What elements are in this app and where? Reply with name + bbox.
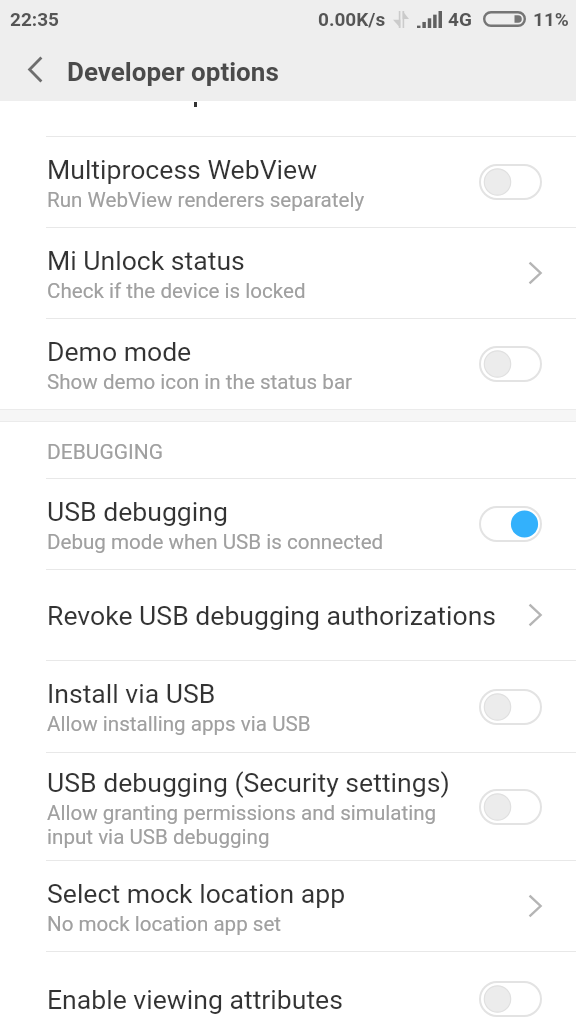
button[interactable]: Multiprocess WebView xyxy=(0,137,576,227)
staticText: USB debugging (Security settings) xyxy=(47,767,450,798)
staticText: 22:35 xyxy=(10,8,59,30)
staticText: Revoke USB debugging authorizations xyxy=(47,600,497,631)
button[interactable]: USB debugging xyxy=(0,479,576,569)
button[interactable]: USB debugging (Security settings) xyxy=(0,753,576,860)
staticText: input via USB debugging xyxy=(47,825,270,849)
staticText: Allow granting permissions and simulatin… xyxy=(47,801,437,825)
staticText: 0.00K/s xyxy=(318,8,386,30)
staticText: Multiprocess WebView xyxy=(47,154,318,185)
staticText: Allow installing apps via USB xyxy=(47,712,311,736)
staticText: Debug mode when USB is connected xyxy=(47,530,384,554)
button[interactable]: Mi Unlock status xyxy=(0,228,576,318)
staticText: No mock location app set xyxy=(47,912,282,936)
staticText: Check if the device is locked xyxy=(47,279,306,303)
staticText: Enable viewing attributes xyxy=(47,984,343,1015)
button[interactable]: Demo mode xyxy=(0,319,576,409)
staticText: 4G xyxy=(448,8,472,30)
button[interactable]: Enable viewing attributes xyxy=(0,952,576,1024)
button[interactable]: Select mock location app xyxy=(0,861,576,951)
staticText: Run WebView renderers separately xyxy=(47,188,365,212)
staticText: USB debugging xyxy=(47,496,228,527)
staticText: Developer options xyxy=(67,57,279,87)
staticText: Show demo icon in the status bar xyxy=(47,370,353,394)
button[interactable]: Revoke USB debugging authorizations xyxy=(0,570,576,660)
staticText: Mi Unlock status xyxy=(47,245,245,276)
staticText: Demo mode xyxy=(47,336,192,367)
staticText: DEBUGGING xyxy=(47,440,164,465)
button[interactable]: Back xyxy=(0,52,70,87)
staticText: Install via USB xyxy=(47,678,216,709)
staticText: Select mock location app xyxy=(47,878,346,909)
staticText: 11% xyxy=(533,8,569,30)
button[interactable]: Install via USB xyxy=(0,661,576,752)
